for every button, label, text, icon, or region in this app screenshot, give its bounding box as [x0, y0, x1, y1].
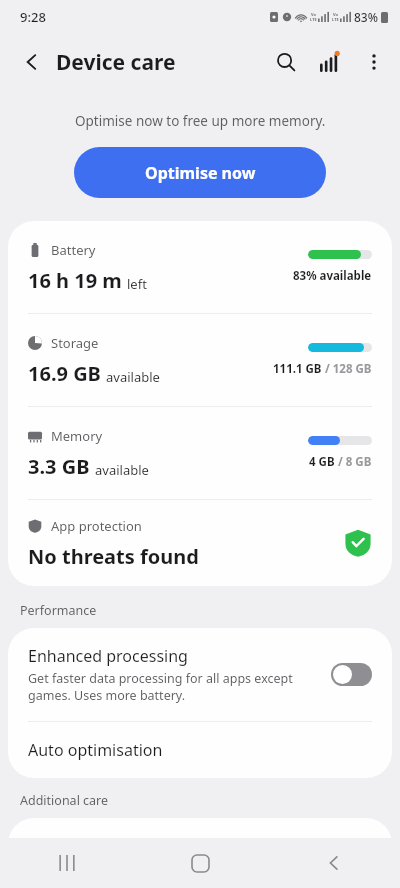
- staticText: Battery: [51, 241, 96, 259]
- staticText: 16.9 GB: [28, 360, 101, 387]
- staticText: No threats found: [28, 543, 199, 570]
- staticText: left: [127, 275, 147, 293]
- staticText: available: [106, 368, 160, 386]
- staticText: Vo: [333, 12, 339, 17]
- staticText: 16 h 19 m: [28, 267, 122, 294]
- staticText: LTE: [310, 17, 317, 22]
- staticText: Auto optimisation: [28, 739, 163, 761]
- staticText: 9:28: [20, 8, 46, 26]
- staticText: Enhanced processing: [28, 645, 188, 667]
- staticText: 83%: [354, 9, 378, 25]
- button[interactable]: Recent apps: [0, 838, 134, 888]
- button[interactable]: Auto optimisation: [8, 722, 392, 778]
- button[interactable]: More options: [352, 40, 396, 84]
- staticText: 3.3 GB: [28, 453, 90, 480]
- staticText: 111.1 GB: [273, 361, 322, 377]
- staticText: Memory: [51, 427, 103, 445]
- staticText: / 128 GB: [322, 361, 372, 377]
- button[interactable]: Optimise now: [74, 147, 326, 198]
- staticText: available: [95, 461, 149, 479]
- button[interactable]: App protection: [8, 500, 392, 586]
- staticText: Storage: [51, 334, 99, 352]
- staticText: Vo: [311, 12, 317, 17]
- staticText: / 8 GB: [335, 454, 372, 470]
- button[interactable]: Back: [12, 42, 52, 82]
- staticText: Performance: [20, 602, 97, 619]
- staticText: Device care: [56, 48, 176, 77]
- button[interactable]: Storage: [8, 314, 392, 406]
- button[interactable]: Home: [134, 838, 267, 888]
- staticText: 4 GB: [309, 454, 335, 470]
- staticText: Additional care: [20, 792, 109, 809]
- staticText: LTE: [332, 17, 339, 22]
- button[interactable]: Search: [264, 40, 308, 84]
- button[interactable]: Usage statistics: [308, 40, 352, 84]
- button[interactable]: Back: [267, 838, 400, 888]
- staticText: Optimise now: [145, 162, 256, 184]
- staticText: App protection: [51, 517, 142, 535]
- button[interactable]: Battery: [8, 221, 392, 313]
- staticText: Optimise now to free up more memory.: [75, 112, 326, 130]
- staticText: Get faster data processing for all apps …: [28, 670, 317, 704]
- staticText: 83% available: [293, 268, 372, 284]
- button[interactable]: Memory: [8, 407, 392, 499]
- button[interactable]: Enhanced processing toggle: [331, 663, 372, 686]
- button[interactable]: Enhanced processing: [8, 628, 392, 721]
